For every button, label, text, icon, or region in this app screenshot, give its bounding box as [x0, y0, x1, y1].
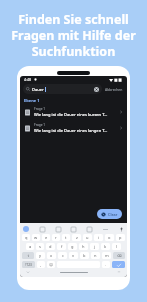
staticText: Wie lang ist die Dauer eines langen T...: [34, 128, 108, 133]
button[interactable]: Back: [26, 270, 30, 274]
button[interactable]: b: [80, 252, 89, 259]
staticText: f: [61, 244, 63, 249]
staticText: l: [116, 244, 118, 249]
staticText: n: [94, 253, 97, 258]
staticText: m: [105, 253, 109, 258]
staticText: Wie lang ist die Dauer eines kurzen T...: [34, 112, 108, 117]
staticText: Clear: [108, 212, 118, 217]
button[interactable]: More: [103, 227, 108, 232]
staticText: c: [62, 253, 64, 258]
button[interactable]: Tool 0: [40, 227, 45, 232]
staticText: d: [49, 244, 52, 249]
staticText: p: [119, 235, 122, 240]
button[interactable]: Enter: [112, 261, 125, 268]
button[interactable]: h: [79, 243, 88, 250]
other: Search: [26, 87, 30, 91]
staticText: q: [25, 235, 28, 240]
other: Clear search: [94, 87, 99, 92]
button[interactable]: ⌫: [113, 252, 125, 259]
staticText: h: [82, 244, 85, 249]
staticText: Dauer: [32, 87, 44, 92]
button[interactable]: Google: [23, 226, 29, 232]
button[interactable]: x: [47, 252, 56, 259]
button[interactable]: c: [58, 252, 67, 259]
button[interactable]: t: [62, 234, 70, 241]
button[interactable]: .: [102, 261, 110, 268]
button[interactable]: ,: [37, 261, 45, 268]
button[interactable]: d: [46, 243, 55, 250]
staticText: t: [65, 235, 67, 240]
button[interactable]: s: [36, 243, 44, 250]
staticText: a: [29, 244, 32, 249]
button[interactable]: Tool 2: [71, 227, 76, 232]
button[interactable]: q: [22, 234, 30, 241]
staticText: z: [76, 235, 78, 240]
button[interactable]: l: [112, 243, 121, 250]
staticText: ☺: [49, 262, 54, 267]
button[interactable]: k: [101, 243, 110, 250]
staticText: u: [86, 235, 89, 240]
button[interactable]: n: [91, 252, 100, 259]
staticText: j: [94, 244, 96, 249]
button[interactable]: Recents: [117, 270, 121, 274]
staticText: .: [105, 262, 107, 267]
button[interactable]: o: [105, 234, 114, 241]
staticText: b: [83, 253, 86, 258]
staticText: ⌫: [117, 254, 122, 258]
button[interactable]: w: [32, 234, 40, 241]
staticText: g: [71, 244, 74, 249]
button[interactable]: g: [68, 243, 77, 250]
button[interactable]: Clear: [97, 209, 122, 219]
staticText: w: [34, 235, 38, 240]
staticText: x: [50, 253, 53, 258]
staticText: y: [39, 253, 42, 258]
staticText: ?123: [25, 263, 32, 267]
staticText: Frage 1: [34, 123, 46, 127]
staticText: ⇧: [27, 254, 30, 258]
button[interactable]: Frage 1: [20, 104, 127, 120]
button[interactable]: Tool 3: [87, 227, 92, 232]
button[interactable]: u: [83, 234, 92, 241]
button[interactable]: m: [102, 252, 111, 259]
button[interactable]: f: [57, 243, 66, 250]
staticText: Finden Sie schnell Fragen mit Hilfe der …: [11, 11, 136, 60]
staticText: Abbrechen: [105, 87, 123, 92]
button[interactable]: Tool 1: [56, 227, 61, 232]
staticText: i: [98, 235, 100, 240]
button[interactable]: Abbrechen: [104, 86, 124, 93]
button[interactable]: Voice input: [119, 227, 124, 232]
button[interactable]: j: [90, 243, 99, 250]
button[interactable]: i: [94, 234, 103, 241]
staticText: 4:48: [24, 77, 32, 82]
staticText: o: [108, 235, 111, 240]
button[interactable]: v: [69, 252, 78, 259]
button[interactable]: Search: [23, 84, 102, 94]
staticText: s: [39, 244, 41, 249]
button[interactable]: y: [36, 252, 45, 259]
button[interactable]: Frage 1: [20, 120, 127, 136]
button[interactable]: ☺: [47, 261, 55, 268]
button[interactable]: ?123: [22, 261, 35, 268]
button[interactable]: a: [26, 243, 34, 250]
button[interactable]: z: [72, 234, 81, 241]
staticText: Frage 1: [34, 107, 46, 111]
staticText: r: [55, 235, 57, 240]
staticText: v: [72, 253, 75, 258]
button[interactable]: e: [42, 234, 50, 241]
staticText: ,: [40, 262, 42, 267]
staticText: e: [45, 235, 48, 240]
button[interactable]: p: [116, 234, 125, 241]
staticText: k: [104, 244, 107, 249]
staticText: Ebene 1: [24, 98, 40, 103]
button[interactable]: ⇧: [22, 252, 34, 259]
button[interactable]: r: [52, 234, 60, 241]
